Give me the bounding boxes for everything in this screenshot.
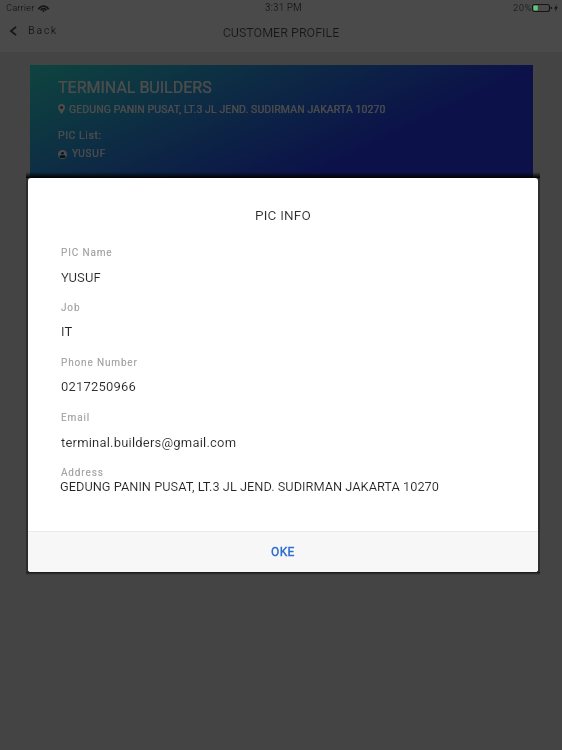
- staticText: PIC List:: [58, 129, 102, 141]
- button[interactable]: OKE: [28, 532, 538, 572]
- staticText: Address: [61, 467, 104, 479]
- staticText: PIC INFO: [28, 207, 538, 223]
- button[interactable]: Back: [0, 19, 66, 42]
- staticText: Job: [61, 302, 81, 314]
- staticText: CUSTOMER PROFILE: [0, 25, 562, 40]
- staticText: Back: [28, 24, 58, 37]
- other: Wi-Fi: [38, 4, 49, 12]
- staticText: 3:31 PM: [265, 2, 302, 14]
- staticText: Email: [61, 412, 91, 424]
- staticText: IT: [61, 324, 73, 339]
- staticText: OKE: [271, 545, 295, 559]
- staticText: YUSUF: [72, 148, 106, 160]
- staticText: GEDUNG PANIN PUSAT, LT.3 JL JEND. SUDIRM…: [69, 103, 386, 115]
- staticText: terminal.builders@gmail.com: [61, 435, 237, 450]
- staticText: Phone Number: [61, 357, 138, 369]
- other: Back: [10, 26, 17, 36]
- staticText: 0217250966: [61, 379, 137, 394]
- staticText: TERMINAL BUILDERS: [58, 78, 212, 97]
- staticText: YUSUF: [61, 270, 101, 285]
- staticText: PIC Name: [61, 247, 113, 259]
- other: Battery 20 percent charging: [532, 4, 552, 12]
- staticText: GEDUNG PANIN PUSAT, LT.3 JL JEND. SUDIRM…: [60, 479, 439, 494]
- button[interactable]: TERMINAL BUILDERS: [30, 65, 533, 495]
- staticText: 20%: [513, 2, 532, 13]
- staticText: Carrier: [6, 2, 35, 13]
